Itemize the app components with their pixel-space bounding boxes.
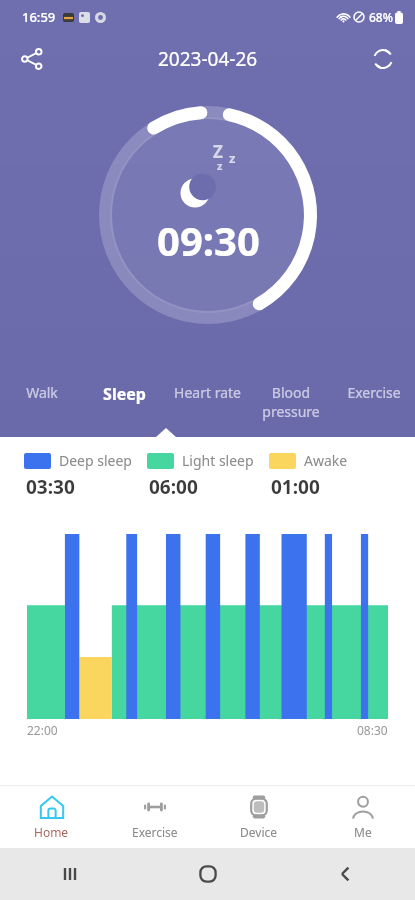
staticText: 08:30 — [357, 722, 388, 738]
staticText: Sleep — [103, 383, 146, 405]
staticText: Awake — [304, 451, 348, 470]
button[interactable]: Exercise — [103, 786, 207, 848]
button[interactable]: Me — [311, 786, 415, 848]
button[interactable]: Home — [0, 786, 103, 848]
staticText: Z — [213, 140, 223, 163]
staticText: 01:00 — [271, 474, 320, 500]
staticText: Heart rate — [174, 383, 241, 402]
staticText: Me — [354, 824, 372, 840]
button[interactable]: Heart rate — [166, 383, 249, 437]
staticText: Home — [34, 824, 69, 840]
button[interactable]: Refresh — [361, 37, 405, 81]
button[interactable]: Recents — [60, 864, 80, 884]
button[interactable]: Blood pressure — [249, 383, 332, 437]
staticText: Deep sleep — [59, 451, 132, 470]
staticText: Exercise — [132, 824, 178, 840]
button[interactable]: Home — [198, 864, 218, 884]
button[interactable]: Sleep — [83, 383, 166, 437]
button[interactable]: Back — [336, 864, 356, 884]
staticText: Walk — [26, 383, 58, 402]
staticText: 68% — [369, 9, 393, 25]
button[interactable]: Walk — [0, 383, 83, 437]
button[interactable]: Share — [10, 37, 54, 81]
button[interactable]: Device — [207, 786, 311, 848]
staticText: 09:30 — [157, 213, 260, 267]
staticText: z — [229, 149, 236, 167]
staticText: z — [217, 158, 223, 173]
staticText: Blood pressure — [262, 383, 320, 421]
staticText: Device — [240, 824, 278, 840]
staticText: Light sleep — [182, 451, 254, 470]
staticText: 2023-04-26 — [158, 46, 258, 72]
staticText: 06:00 — [149, 474, 198, 500]
staticText: Exercise — [347, 383, 401, 402]
staticText: 22:00 — [27, 722, 58, 738]
button[interactable]: Exercise — [332, 383, 415, 437]
staticText: 16:59 — [22, 8, 56, 26]
staticText: 03:30 — [26, 474, 75, 500]
